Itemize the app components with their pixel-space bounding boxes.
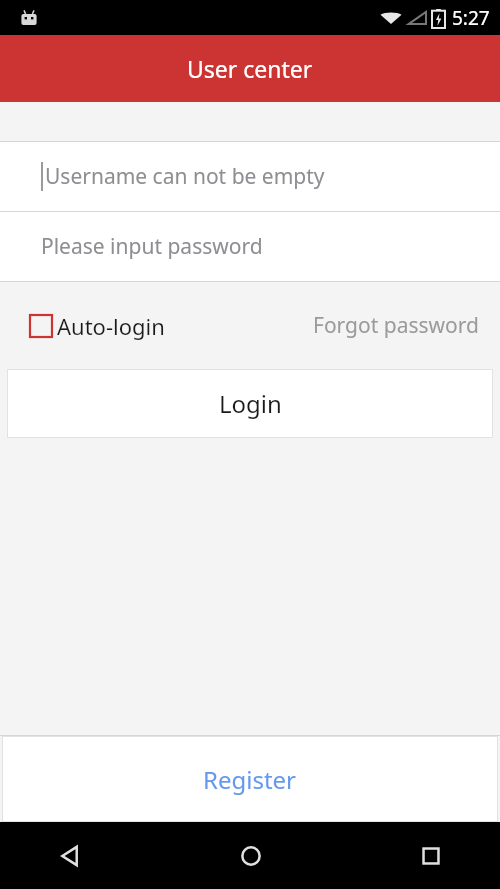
staticText: Forgot password	[313, 311, 479, 340]
button[interactable]: Login	[7, 369, 493, 438]
staticText: 5:27	[452, 5, 490, 31]
staticText: Login	[219, 387, 282, 420]
staticText: Register	[203, 763, 297, 796]
button[interactable]: Forgot password	[313, 311, 479, 340]
button[interactable]: Auto-login	[30, 311, 165, 341]
button[interactable]: Recents	[361, 822, 500, 889]
staticText: Please input password	[41, 232, 263, 261]
staticText: User center	[187, 53, 313, 84]
button[interactable]: Home	[181, 822, 320, 889]
button[interactable]: Username can not be empty	[0, 142, 500, 211]
button[interactable]: Register	[2, 736, 498, 822]
button[interactable]: Please input password	[0, 212, 500, 281]
staticText: Username can not be empty	[45, 162, 325, 191]
button[interactable]: Back	[0, 822, 139, 889]
staticText: Auto-login	[57, 311, 165, 341]
